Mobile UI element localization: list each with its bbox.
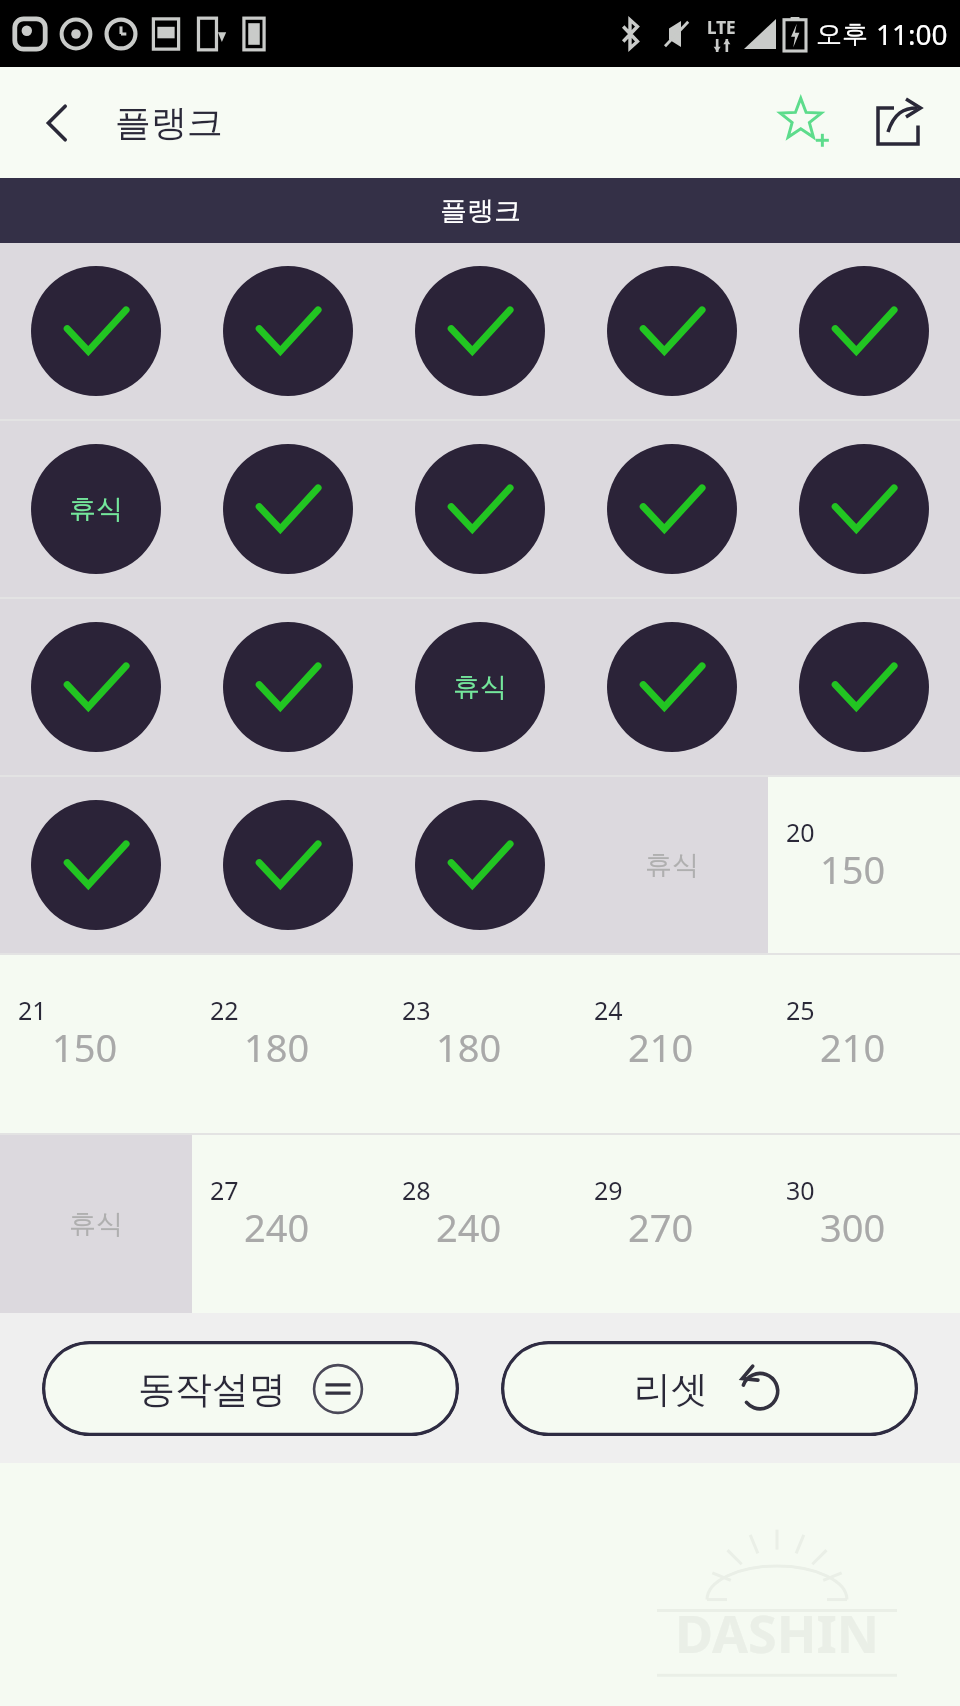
staticText: 동작설명 [138, 1366, 286, 1413]
staticText: 270 [628, 1201, 694, 1253]
button[interactable]: 25 [768, 955, 960, 1133]
button[interactable]: 29 [576, 1135, 768, 1313]
button[interactable] [768, 243, 960, 419]
staticText: 240 [436, 1201, 502, 1253]
staticText: 300 [820, 1201, 886, 1253]
staticText: 11:00 [876, 15, 948, 53]
button[interactable]: 22 [192, 955, 384, 1133]
staticText: 오후 [816, 18, 868, 51]
button[interactable]: Share [858, 83, 938, 163]
staticText: 21 [18, 993, 47, 1027]
staticText: 27 [210, 1173, 239, 1207]
staticText: LTE [707, 16, 736, 39]
staticText: 210 [820, 1021, 886, 1073]
button[interactable] [768, 599, 960, 775]
button[interactable] [384, 243, 576, 419]
staticText: 29 [594, 1173, 623, 1207]
staticText: 20 [786, 815, 815, 849]
button[interactable] [192, 421, 384, 597]
staticText: 플랭크 [440, 194, 521, 228]
button[interactable] [768, 421, 960, 597]
button[interactable]: Back [20, 85, 96, 161]
staticText: 휴식 [69, 492, 123, 526]
button[interactable] [384, 421, 576, 597]
staticText: 25 [786, 993, 815, 1027]
button[interactable] [0, 777, 192, 953]
button[interactable]: 28 [384, 1135, 576, 1313]
staticText: 150 [52, 1021, 118, 1073]
staticText: 180 [244, 1021, 310, 1073]
staticText: 23 [402, 993, 431, 1027]
button[interactable] [0, 243, 192, 419]
button[interactable]: 리셋 [501, 1341, 918, 1436]
button[interactable]: 24 [576, 955, 768, 1133]
staticText: 240 [244, 1201, 310, 1253]
button[interactable] [192, 777, 384, 953]
button[interactable]: 휴식 [384, 599, 576, 775]
button[interactable]: Add to favorites [764, 83, 844, 163]
button[interactable] [576, 421, 768, 597]
staticText: 22 [210, 993, 239, 1027]
button[interactable]: 20 [768, 777, 960, 953]
staticText: 플랭크 [115, 100, 223, 145]
button[interactable]: 23 [384, 955, 576, 1133]
button[interactable] [0, 599, 192, 775]
staticText: DASHIN [675, 1597, 879, 1668]
button[interactable]: 휴식 [576, 777, 768, 953]
button[interactable]: 27 [192, 1135, 384, 1313]
staticText: 210 [628, 1021, 694, 1073]
staticText: 30 [786, 1173, 815, 1207]
staticText: 150 [820, 843, 886, 895]
button[interactable] [192, 243, 384, 419]
staticText: 28 [402, 1173, 431, 1207]
button[interactable]: 휴식 [0, 1135, 192, 1313]
button[interactable] [192, 599, 384, 775]
button[interactable]: 휴식 [0, 421, 192, 597]
staticText: 180 [436, 1021, 502, 1073]
staticText: 휴식 [645, 848, 699, 882]
staticText: 24 [594, 993, 623, 1027]
staticText: 휴식 [69, 1207, 123, 1241]
button[interactable]: 30 [768, 1135, 960, 1313]
staticText: 리셋 [634, 1366, 708, 1413]
button[interactable] [384, 777, 576, 953]
staticText: 휴식 [453, 670, 507, 704]
button[interactable] [576, 599, 768, 775]
button[interactable]: 21 [0, 955, 192, 1133]
button[interactable]: 동작설명 [42, 1341, 459, 1436]
button[interactable] [576, 243, 768, 419]
